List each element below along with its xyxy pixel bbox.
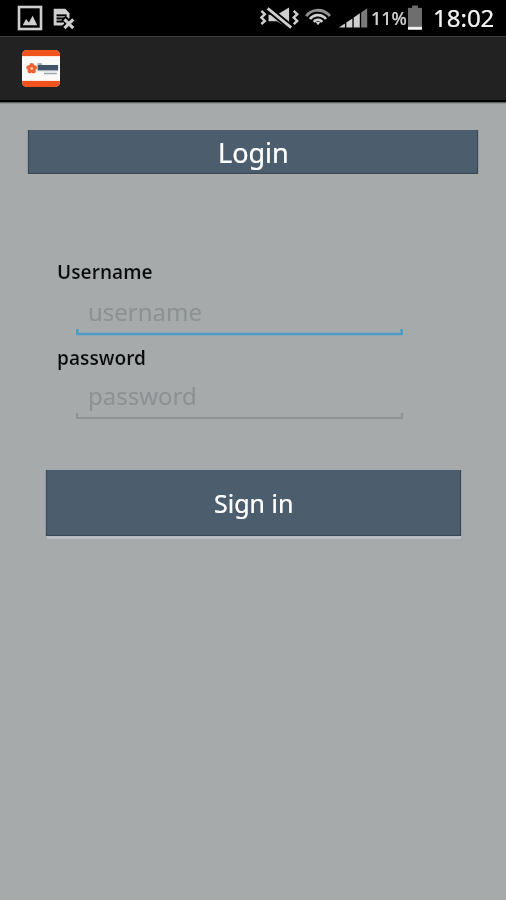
staticText: Username — [57, 259, 153, 285]
other: Wi-Fi connected — [303, 5, 333, 31]
staticText: 18:02 — [433, 1, 495, 34]
staticText: username — [88, 295, 203, 328]
staticText: password — [88, 379, 197, 412]
button[interactable]: Username field — [76, 324, 403, 336]
button[interactable]: App logo — [22, 50, 60, 87]
other: Vibrate mode — [258, 6, 300, 30]
other: Mobile signal — [338, 6, 368, 30]
other: Screenshot captured — [19, 7, 41, 29]
button[interactable]: Login — [28, 130, 478, 174]
other: Download failed — [53, 7, 75, 29]
staticText: Sign in — [214, 486, 294, 520]
staticText: Login — [218, 134, 289, 171]
button[interactable]: Password field — [76, 408, 403, 420]
staticText: password — [57, 345, 146, 371]
staticText: 11% — [371, 6, 407, 31]
button[interactable]: Sign in — [46, 470, 461, 536]
other: Battery 11 percent — [406, 5, 424, 31]
